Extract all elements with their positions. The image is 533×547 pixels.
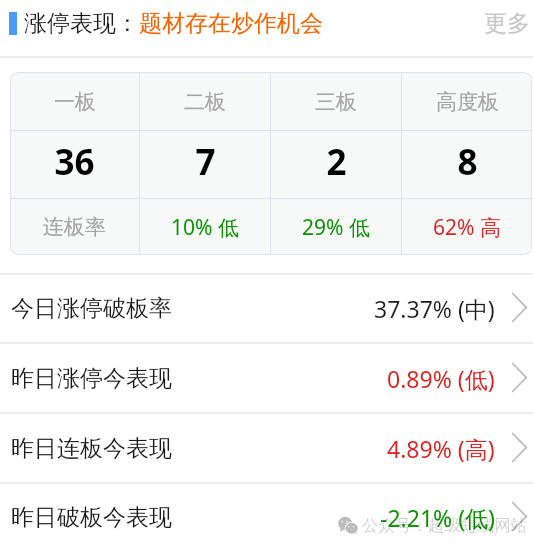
staticText: 高度板 bbox=[436, 89, 499, 115]
button[interactable]: 今日涨停破板率 bbox=[0, 275, 533, 342]
staticText: 涨停表现： bbox=[24, 9, 139, 38]
staticText: 0.89% (低) bbox=[387, 363, 495, 394]
other: Open details bbox=[512, 433, 527, 462]
button[interactable]: 昨日连板今表现 bbox=[0, 414, 533, 482]
button[interactable]: 昨日破板今表现 bbox=[0, 484, 533, 547]
staticText: 4.89% (高) bbox=[387, 433, 495, 464]
staticText: 62% 高 bbox=[433, 213, 501, 242]
staticText: 三板 bbox=[315, 89, 357, 115]
staticText: 37.37% (中) bbox=[374, 293, 495, 324]
staticText: 8 bbox=[457, 138, 478, 186]
button[interactable]: 昨日涨停今表现 bbox=[0, 344, 533, 412]
staticText: 昨日破板今表现 bbox=[11, 503, 172, 532]
staticText: 昨日涨停今表现 bbox=[11, 364, 172, 393]
staticText: 今日涨停破板率 bbox=[11, 294, 172, 323]
staticText: 更多 bbox=[484, 9, 530, 38]
staticText: 7 bbox=[195, 138, 216, 186]
other: Open details bbox=[512, 502, 527, 531]
staticText: 29% 低 bbox=[302, 213, 370, 242]
other: Open details bbox=[512, 293, 527, 322]
staticText: 连板率 bbox=[43, 214, 106, 240]
staticText: 36 bbox=[54, 138, 95, 186]
staticText: 2 bbox=[326, 138, 347, 186]
other: Open details bbox=[512, 363, 527, 392]
staticText: 一板 bbox=[54, 89, 96, 115]
staticText: -2.21% (低) bbox=[380, 502, 495, 533]
staticText: 昨日连板今表现 bbox=[11, 434, 172, 463]
staticText: 公众号：超级短线网站 bbox=[362, 515, 527, 536]
button[interactable]: 更多 bbox=[482, 9, 530, 38]
staticText: 题材存在炒作机会 bbox=[139, 9, 323, 38]
staticText: 二板 bbox=[184, 89, 226, 115]
staticText: 10% 低 bbox=[171, 213, 239, 242]
